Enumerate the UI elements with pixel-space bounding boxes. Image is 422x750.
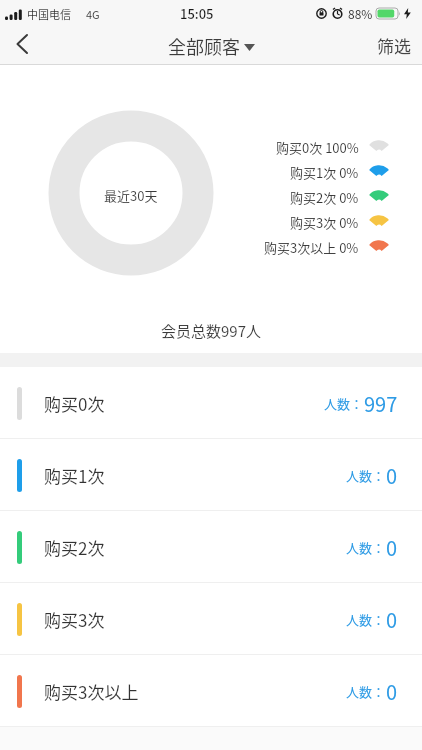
staticText: 997	[364, 389, 398, 418]
staticText: 购买0次	[44, 391, 105, 416]
staticText: 人数：	[324, 394, 364, 413]
staticText: 0	[386, 461, 398, 490]
staticText: 购买3次 0%	[290, 213, 359, 230]
staticText: 购买1次	[44, 463, 105, 488]
button[interactable]: 全部顾客	[168, 33, 255, 59]
button[interactable]: 购买1次	[0, 439, 422, 511]
staticText: 购买0次 100%	[276, 138, 359, 155]
staticText: 筛选	[377, 33, 411, 58]
staticText: 人数：	[346, 538, 386, 557]
staticText: 会员总数997人	[161, 320, 261, 342]
button[interactable]: 购买3次以上	[0, 655, 422, 727]
button[interactable]: 筛选	[377, 33, 422, 58]
staticText: 最近30天	[104, 186, 158, 205]
button[interactable]: 购买2次	[0, 511, 422, 583]
staticText: 人数：	[346, 610, 386, 629]
staticText: 4G	[86, 6, 100, 22]
button[interactable]: 购买3次	[0, 583, 422, 655]
staticText: 0	[386, 677, 398, 706]
staticText: 购买3次以上	[44, 679, 139, 704]
staticText: 88%	[348, 5, 373, 22]
staticText: 15:05	[180, 4, 214, 23]
staticText: 购买3次以上 0%	[264, 238, 359, 255]
staticText: 中国电信	[27, 6, 71, 22]
staticText: 0	[386, 605, 398, 634]
staticText: 0	[386, 533, 398, 562]
staticText: 全部顾客	[168, 33, 240, 59]
staticText: 人数：	[346, 682, 386, 701]
staticText: 购买2次	[44, 535, 105, 560]
button[interactable]	[8, 30, 36, 58]
staticText: 购买1次 0%	[290, 163, 359, 180]
staticText: 人数：	[346, 466, 386, 485]
staticText: 购买3次	[44, 607, 105, 632]
staticText: 购买2次 0%	[290, 188, 359, 205]
button[interactable]: 购买0次	[0, 367, 422, 439]
